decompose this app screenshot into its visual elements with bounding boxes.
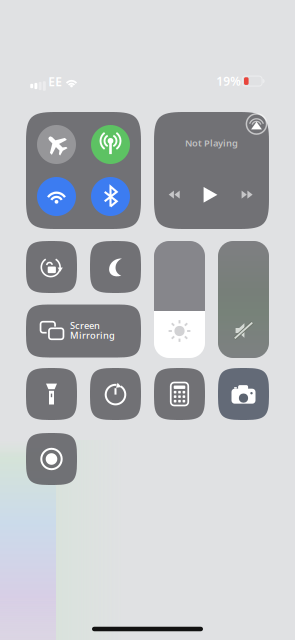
button[interactable]: Screen Recording — [26, 433, 77, 485]
button[interactable]: Cellular Data — [91, 125, 130, 164]
button[interactable]: Play — [201, 186, 219, 204]
button[interactable]: Rewind — [168, 190, 180, 200]
button[interactable]: Wi-Fi — [37, 177, 76, 216]
staticText: 19% — [216, 73, 241, 89]
button[interactable]: Camera — [218, 368, 269, 420]
button[interactable]: Timer — [90, 368, 141, 420]
button[interactable]: Brightness — [154, 241, 205, 358]
button[interactable]: Volume — [218, 241, 269, 358]
staticText: EE — [48, 73, 62, 89]
staticText: Screen — [70, 319, 100, 331]
button[interactable]: Screen — [26, 304, 141, 357]
button[interactable]: Flashlight — [26, 368, 77, 420]
button[interactable]: Calculator — [154, 368, 205, 420]
button[interactable]: Bluetooth — [91, 177, 130, 216]
button[interactable]: Fast Forward — [241, 190, 253, 200]
staticText: Mirroring — [70, 329, 115, 341]
button[interactable]: AirPlay — [245, 113, 267, 135]
button[interactable]: Airplane Mode — [37, 125, 76, 164]
button[interactable]: Rotation Lock — [26, 241, 77, 293]
button[interactable]: Do Not Disturb — [90, 241, 141, 293]
staticText: Not Playing — [185, 137, 238, 149]
